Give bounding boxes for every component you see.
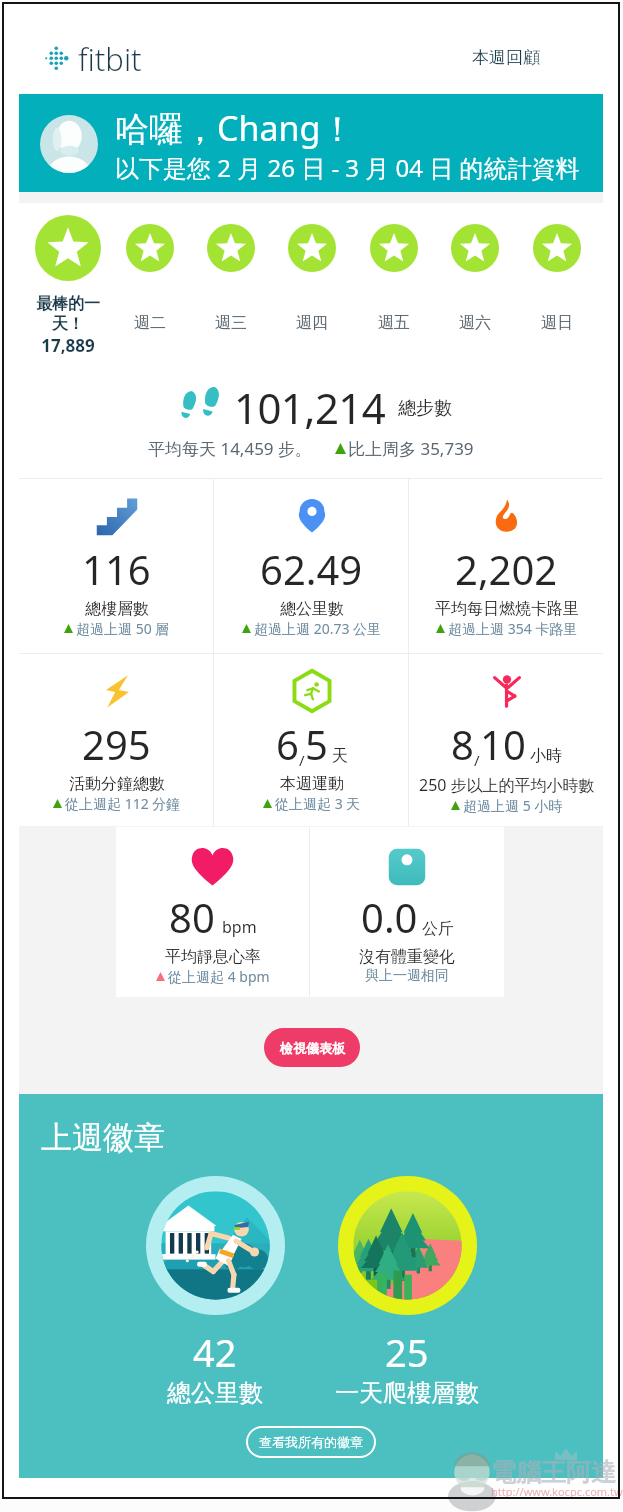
- button[interactable]: fitbit: [44, 38, 142, 80]
- staticText: 平均每天 14,459 步。: [148, 437, 313, 460]
- staticText: 電腦王阿達: [491, 1457, 616, 1488]
- staticText: 超過上週 354 卡路里: [448, 619, 578, 638]
- staticText: /: [299, 750, 305, 770]
- button[interactable]: 0.0: [310, 827, 504, 997]
- staticText: 沒有體重變化: [359, 947, 455, 967]
- staticText: 哈囉，Chang！: [115, 105, 355, 151]
- staticText: 5: [305, 717, 328, 771]
- staticText: 平均每日燃燒卡路里: [435, 599, 579, 619]
- staticText: 週三: [215, 313, 247, 333]
- staticText: 小時: [530, 746, 562, 766]
- button[interactable]: 6: [214, 654, 409, 828]
- staticText: 天: [332, 746, 348, 766]
- staticText: 250 步以上的平均小時數: [419, 774, 595, 796]
- staticText: 超過上週 50 層: [76, 619, 170, 638]
- staticText: http://www.kocpc.com.tw: [491, 1484, 623, 1499]
- staticText: 0.0: [361, 890, 418, 944]
- staticText: 週五: [378, 313, 410, 333]
- staticText: 42: [193, 1326, 237, 1378]
- staticText: fitbit: [78, 38, 142, 80]
- staticText: 從上週起 112 分鐘: [65, 794, 181, 813]
- button[interactable]: 週五: [354, 214, 434, 354]
- staticText: 超過上週 5 小時: [463, 796, 563, 815]
- staticText: 查看我所有的徽章: [259, 1434, 363, 1450]
- button[interactable]: 8: [409, 654, 604, 828]
- staticText: /: [474, 750, 480, 770]
- staticText: 本週運動: [280, 774, 344, 794]
- button[interactable]: 25: [322, 1176, 492, 1408]
- staticText: 以下是您 2 月 26 日 - 3 月 04 日 的統計資料: [115, 151, 580, 184]
- button[interactable]: 週日: [517, 214, 597, 354]
- button[interactable]: 295: [19, 654, 214, 828]
- staticText: 總樓層數: [85, 599, 149, 619]
- staticText: 一天爬樓層數: [335, 1378, 479, 1408]
- button[interactable]: 本週回顧: [472, 47, 540, 68]
- staticText: 295: [82, 717, 151, 771]
- staticText: 62.49: [260, 542, 363, 596]
- staticText: 總步數: [398, 397, 452, 420]
- button[interactable]: 週四: [272, 214, 352, 354]
- button[interactable]: 42: [130, 1176, 300, 1408]
- staticText: 週六: [459, 313, 491, 333]
- staticText: 公斤: [422, 919, 454, 939]
- staticText: 6: [276, 717, 299, 771]
- staticText: 檢視儀表板: [280, 1040, 345, 1056]
- button[interactable]: 116: [19, 479, 214, 653]
- staticText: bpm: [222, 916, 257, 938]
- button[interactable]: 週三: [191, 214, 271, 354]
- button[interactable]: 2,202: [409, 479, 604, 653]
- staticText: 超過上週 20.73 公里: [254, 619, 382, 638]
- staticText: 10: [480, 717, 526, 771]
- staticText: 從上週起 3 天: [275, 794, 361, 813]
- button[interactable]: 週二: [110, 214, 190, 354]
- staticText: 本週回顧: [472, 47, 540, 68]
- button[interactable]: 80: [116, 827, 309, 997]
- staticText: 週四: [296, 313, 328, 333]
- staticText: 17,889: [41, 334, 95, 354]
- staticText: 80: [169, 890, 215, 944]
- staticText: 平均靜息心率: [165, 947, 261, 967]
- staticText: 與上一週相同: [365, 967, 449, 985]
- staticText: 101,214: [234, 379, 386, 429]
- staticText: 總公里數: [280, 599, 344, 619]
- button[interactable]: 檢視儀表板: [264, 1028, 360, 1067]
- button[interactable]: 週六: [435, 214, 515, 354]
- staticText: 116: [82, 542, 151, 596]
- staticText: 2,202: [455, 542, 558, 596]
- staticText: 週二: [134, 313, 166, 333]
- staticText: 從上週起 4 bpm: [168, 967, 270, 986]
- button[interactable]: 查看我所有的徽章: [246, 1426, 376, 1458]
- staticText: 8: [451, 717, 474, 771]
- staticText: 總公里數: [167, 1378, 263, 1408]
- button[interactable]: 最棒的一天！: [28, 214, 108, 354]
- staticText: 比上周多 35,739: [348, 437, 474, 460]
- staticText: 25: [385, 1326, 429, 1378]
- staticText: 週日: [541, 313, 573, 333]
- staticText: 活動分鐘總數: [69, 774, 165, 794]
- button[interactable]: 62.49: [214, 479, 409, 653]
- staticText: 最棒的一天！: [33, 294, 103, 334]
- staticText: 上週徽章: [41, 1118, 165, 1157]
